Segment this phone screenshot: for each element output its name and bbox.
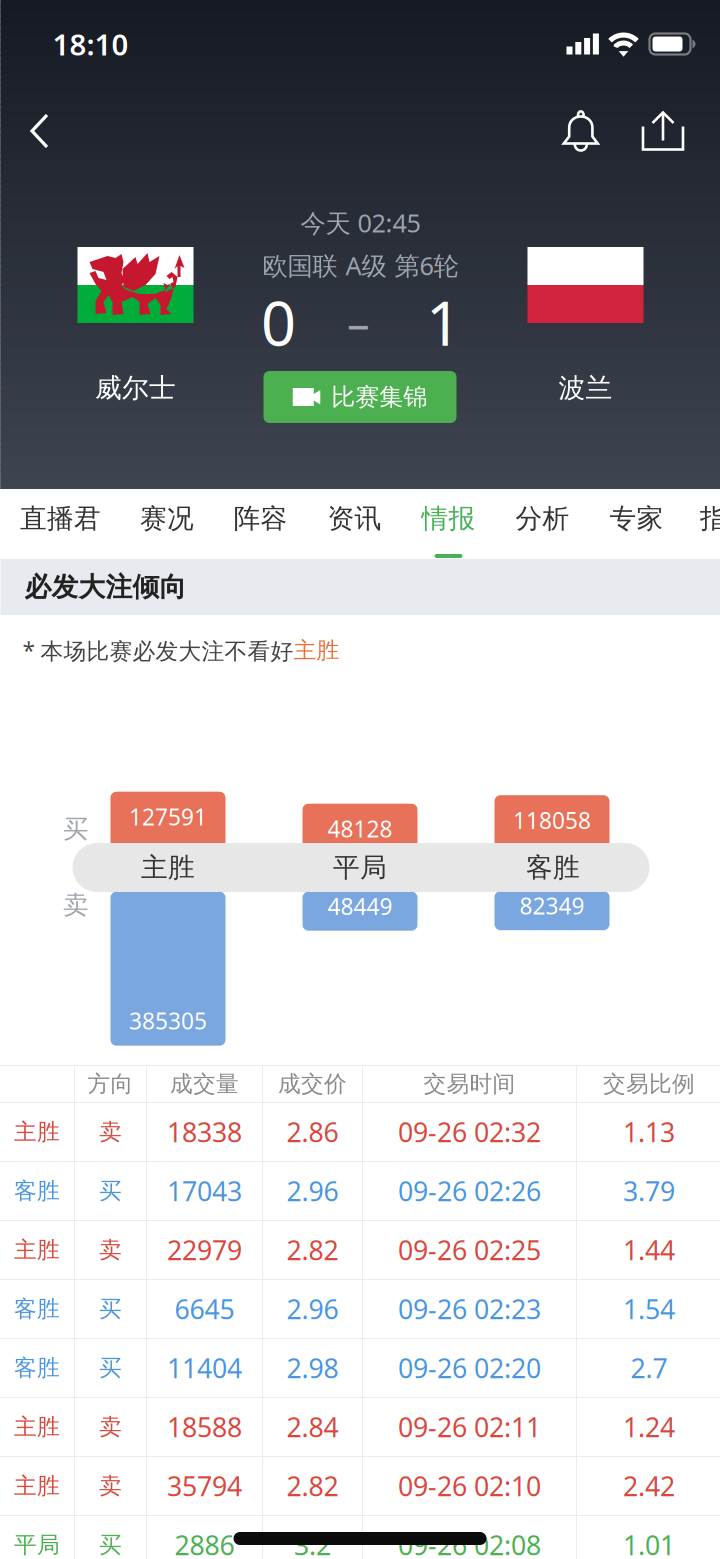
staticText: 2.82 — [286, 1468, 338, 1504]
staticText: 1.13 — [623, 1114, 675, 1150]
staticText: 1.44 — [623, 1232, 675, 1268]
staticText: 3.2 — [294, 1527, 331, 1559]
staticText: 买 — [63, 813, 88, 844]
staticText: 82349 — [519, 891, 584, 921]
staticText: 18338 — [167, 1114, 242, 1150]
staticText: 指 — [700, 502, 720, 535]
staticText: 客胜 — [14, 1295, 60, 1323]
staticText: 主胜 — [293, 637, 339, 664]
staticText: 2.7 — [630, 1350, 667, 1386]
staticText: 买 — [99, 1354, 122, 1382]
staticText: 48449 — [327, 891, 392, 921]
staticText: 成交价 — [278, 1070, 347, 1098]
staticText: 1.24 — [623, 1409, 675, 1445]
staticText: 2.96 — [286, 1291, 338, 1327]
staticText: 卖 — [99, 1472, 122, 1500]
staticText: 0 — [261, 281, 296, 363]
staticText: 客胜 — [526, 851, 580, 884]
button[interactable]: 专家 — [589, 489, 683, 559]
staticText: 6645 — [174, 1291, 234, 1327]
button[interactable]: 赛况 — [120, 489, 213, 559]
staticText: 比赛集锦 — [331, 382, 427, 412]
staticText: 09-26 02:10 — [398, 1468, 541, 1504]
staticText: 18588 — [167, 1409, 242, 1445]
staticText: 1.01 — [623, 1527, 675, 1559]
staticText: 127591 — [129, 802, 207, 832]
button[interactable]: Back — [12, 88, 67, 174]
staticText: 17043 — [167, 1173, 242, 1209]
staticText: 09-26 02:26 — [398, 1173, 541, 1209]
staticText: 2.82 — [286, 1232, 338, 1268]
button[interactable]: 资讯 — [307, 489, 401, 559]
staticText: 主胜 — [14, 1118, 60, 1146]
staticText: 385305 — [129, 1006, 207, 1036]
staticText: 18:10 — [52, 24, 128, 63]
button[interactable]: 指 — [683, 489, 720, 559]
button[interactable]: 比赛集锦 — [263, 371, 456, 423]
button[interactable]: 分析 — [495, 489, 589, 559]
staticText: 主胜 — [14, 1413, 60, 1441]
staticText: 2.96 — [286, 1173, 338, 1209]
staticText: 09-26 02:25 — [398, 1232, 541, 1268]
staticText: 48128 — [327, 814, 392, 844]
staticText: 今天 02:45 — [300, 206, 420, 239]
staticText: 主胜 — [14, 1472, 60, 1500]
staticText: 成交量 — [170, 1070, 239, 1098]
staticText: 1 — [426, 281, 461, 363]
staticText: 必发大注倾向 — [24, 571, 186, 603]
staticText: 分析 — [515, 502, 569, 535]
staticText: – — [347, 292, 370, 352]
staticText: 3.79 — [623, 1173, 675, 1209]
staticText: 主胜 — [14, 1236, 60, 1264]
staticText: 平局 — [333, 851, 387, 884]
staticText: 22979 — [167, 1232, 242, 1268]
staticText: 1.54 — [623, 1291, 675, 1327]
staticText: 情报 — [421, 502, 475, 535]
staticText: 卖 — [63, 889, 88, 920]
staticText: 11404 — [167, 1350, 242, 1386]
staticText: 交易时间 — [423, 1070, 515, 1098]
staticText: 资讯 — [327, 502, 381, 535]
staticText: 主胜 — [141, 851, 195, 884]
staticText: 2.42 — [623, 1468, 675, 1504]
button[interactable]: Notifications — [546, 88, 615, 174]
staticText: 09-26 02:08 — [398, 1527, 541, 1559]
staticText: 威尔士 — [95, 372, 176, 404]
staticText: 卖 — [99, 1413, 122, 1441]
staticText: 2.98 — [286, 1350, 338, 1386]
button[interactable]: Share — [627, 88, 698, 174]
staticText: 35794 — [167, 1468, 242, 1504]
staticText: 欧国联 A级 第6轮 — [262, 248, 458, 282]
button[interactable]: 情报 — [401, 489, 495, 559]
staticText: 09-26 02:23 — [398, 1291, 541, 1327]
staticText: 买 — [99, 1531, 122, 1559]
button[interactable]: 直播君 — [0, 489, 120, 559]
staticText: 交易比例 — [603, 1070, 695, 1098]
staticText: 09-26 02:32 — [398, 1114, 541, 1150]
staticText: 方向 — [87, 1070, 133, 1098]
staticText: 买 — [99, 1177, 122, 1205]
staticText: 阵容 — [233, 502, 287, 535]
staticText: 09-26 02:20 — [398, 1350, 541, 1386]
staticText: 买 — [99, 1295, 122, 1323]
staticText: 平局 — [14, 1531, 60, 1559]
staticText: 2.84 — [286, 1409, 338, 1445]
staticText: 卖 — [99, 1118, 122, 1146]
staticText: 118058 — [513, 805, 591, 835]
staticText: 直播君 — [20, 502, 101, 535]
staticText: 2.86 — [286, 1114, 338, 1150]
staticText: 专家 — [609, 502, 663, 535]
staticText: 2886 — [174, 1527, 234, 1559]
staticText: 09-26 02:11 — [398, 1409, 541, 1445]
staticText: 波兰 — [558, 372, 612, 404]
staticText: 卖 — [99, 1236, 122, 1264]
staticText: * 本场比赛必发大注不看好 — [22, 635, 293, 665]
staticText: 客胜 — [14, 1354, 60, 1382]
staticText: 客胜 — [14, 1177, 60, 1205]
button[interactable]: 阵容 — [213, 489, 307, 559]
staticText: 赛况 — [140, 502, 194, 535]
